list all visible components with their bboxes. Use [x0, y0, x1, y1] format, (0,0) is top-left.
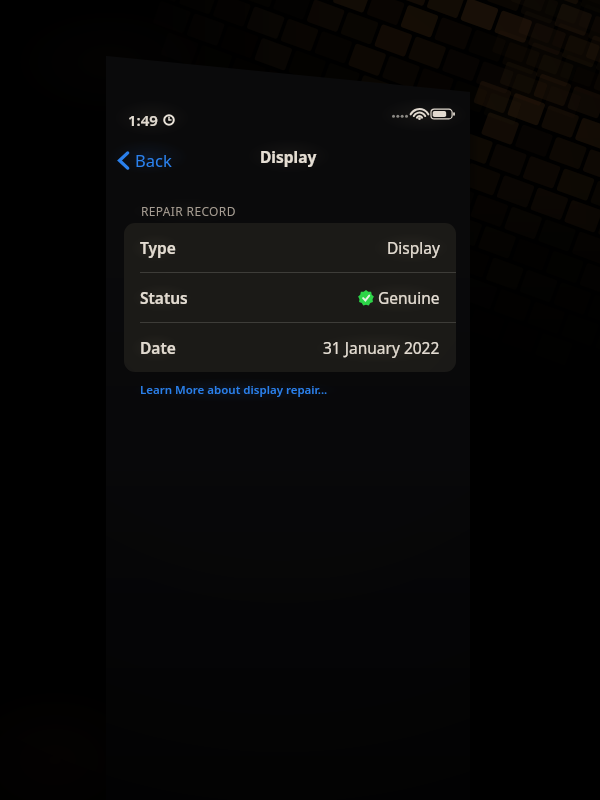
staticText: Type	[140, 237, 176, 258]
button[interactable]: Back	[112, 144, 180, 176]
button[interactable]: Status	[124, 273, 456, 322]
button[interactable]: Date	[124, 323, 456, 372]
staticText: 1:49	[128, 110, 158, 130]
staticText: Status	[140, 287, 188, 308]
staticText: Date	[140, 337, 176, 358]
staticText: 31 January 2022	[323, 337, 440, 358]
staticText: Back	[135, 149, 172, 171]
staticText: Display	[387, 237, 440, 258]
staticText: Display	[260, 146, 317, 167]
staticText: Learn More about display repair...	[140, 382, 328, 398]
button[interactable]: Type	[124, 223, 456, 272]
button[interactable]: Learn More about display repair...	[134, 379, 338, 402]
staticText: Genuine	[378, 287, 440, 308]
staticText: REPAIR RECORD	[141, 203, 236, 219]
